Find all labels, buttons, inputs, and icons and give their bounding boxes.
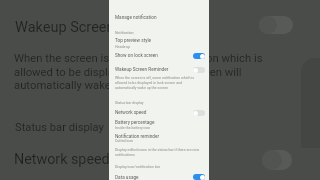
staticText: Display edited icons in the status bar i… [115,148,207,157]
staticText: Data usage [115,175,139,180]
staticText: Notification reminder [115,134,159,140]
staticText: Display icon/notification bar [115,165,160,169]
staticText: Cutted icon [115,139,134,143]
button[interactable]: Toggle off [193,110,205,116]
staticText: Network speed [115,110,147,116]
staticText: Notification [115,31,134,35]
staticText: Inside the battery icon [115,126,151,130]
staticText: Battery percentage [115,120,155,126]
staticText: Status bar display [15,121,104,134]
staticText: Status bar display [115,101,144,105]
button[interactable]: Toggle on [193,174,205,180]
staticText: Heads-up [115,45,131,49]
staticText: When the screen is off, some notificatio… [14,52,320,91]
staticText: Wakeup Screen Reminder [115,67,169,73]
staticText: Wakeup Screen Reminder [15,19,180,36]
staticText: Show on lock screen [115,53,158,59]
staticText: Network speed [14,151,110,168]
button[interactable]: Toggle on [193,53,205,59]
button[interactable]: Toggle off [193,67,205,73]
staticText: Top preview style [115,38,152,44]
staticText: Manage notification [115,15,157,21]
staticText: When the screen is off, some notificatio… [115,76,205,90]
